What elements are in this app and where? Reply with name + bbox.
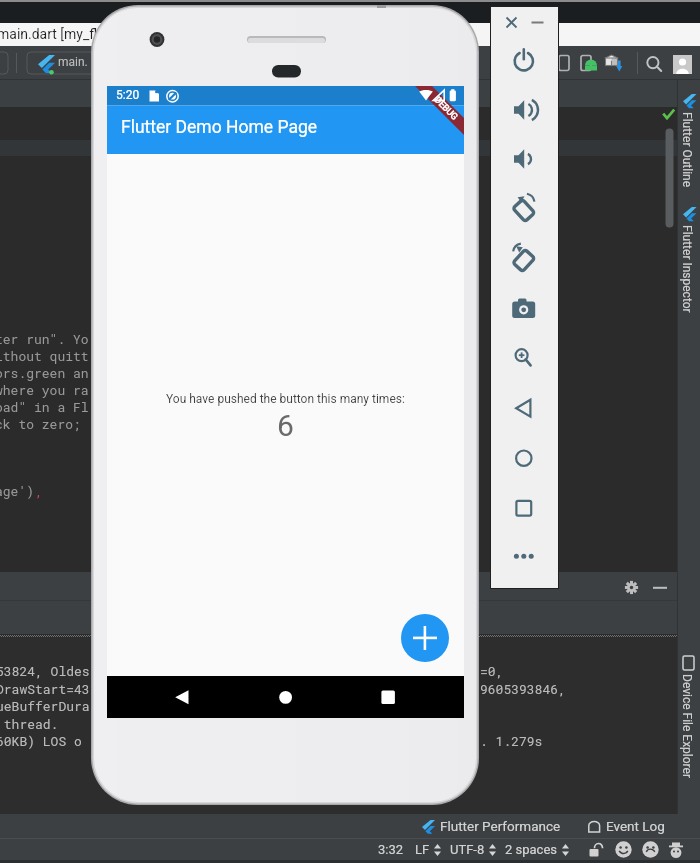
button[interactable]: Happy (615, 841, 632, 858)
staticText: UTF-8 (450, 842, 485, 857)
staticText: Flutter Demo Home Page (121, 117, 318, 138)
button[interactable]: Volume down (504, 146, 544, 172)
staticText: Flutter Inspector (680, 225, 694, 313)
staticText: Device File Explorer (680, 674, 694, 778)
button[interactable]: Flutter Inspector (679, 207, 700, 221)
staticText: ter run". Yo (0, 330, 89, 347)
button[interactable]: Screenshot (504, 296, 544, 322)
button[interactable]: Volume up (504, 97, 544, 123)
staticText: LF (415, 842, 430, 857)
button[interactable]: Back (504, 395, 544, 421)
button[interactable]: Flutter Performance (421, 818, 557, 834)
staticText: ors.green an (0, 364, 89, 381)
staticText: ithout quitt (0, 347, 89, 364)
button[interactable]: Device File Explorer (679, 656, 700, 670)
staticText: 53824, Oldes (0, 662, 90, 679)
button[interactable]: 2 spaces (505, 842, 570, 857)
button[interactable]: More (504, 543, 544, 569)
button[interactable]: Search (643, 52, 663, 72)
staticText: . 1.279s (480, 732, 543, 749)
staticText: , (35, 482, 43, 499)
button[interactable]: Event Log (587, 818, 661, 834)
button[interactable]: Hide (651, 580, 669, 598)
staticText: 5:20 (116, 88, 140, 102)
button[interactable]: Sad (642, 841, 659, 858)
staticText: ck to zero; (0, 415, 89, 432)
staticText: main. (58, 55, 88, 69)
button[interactable]: Flutter Outline (679, 94, 700, 108)
button[interactable]: Power (504, 47, 544, 73)
staticText: 2 spaces (505, 842, 558, 857)
staticText: 9605393846, (480, 680, 566, 697)
staticText: Flutter Performance (440, 818, 561, 834)
staticText: ueBufferDura (0, 697, 90, 714)
button[interactable]: Settings (624, 580, 639, 595)
button[interactable]: Zoom (504, 345, 544, 371)
button[interactable]: Minimise (530, 15, 545, 30)
button[interactable]: Device manager (556, 54, 574, 72)
button[interactable]: Rotate right (504, 246, 544, 272)
button[interactable]: LF (415, 842, 442, 857)
button[interactable]: Close (504, 15, 519, 30)
button[interactable]: Lock (589, 843, 603, 857)
staticText: main.dart [my_fl (0, 26, 98, 42)
staticText: thread. (0, 715, 59, 732)
staticText: 6 (277, 408, 294, 443)
staticText: =0, (480, 662, 504, 679)
staticText: oad" in a Fl (0, 398, 89, 415)
staticText: age') (0, 482, 35, 499)
button[interactable]: Home (504, 445, 544, 471)
button[interactable]: Feedback (668, 842, 684, 858)
staticText: 60KB) LOS o (0, 732, 82, 749)
staticText: Flutter Outline (680, 112, 694, 188)
staticText: DrawStart=43 (0, 680, 90, 697)
button[interactable]: 3:32 (378, 842, 404, 857)
button[interactable]: Rotate left (504, 196, 544, 222)
staticText: You have pushed the button this many tim… (166, 392, 405, 406)
staticText: DEBUG (432, 95, 460, 123)
button[interactable]: Increment (401, 614, 449, 662)
staticText: where you ra (0, 381, 89, 398)
staticText: Event Log (606, 818, 665, 834)
button[interactable]: AVD manager (580, 54, 598, 72)
button[interactable]: Overview (504, 495, 544, 521)
button[interactable]: Account (673, 55, 692, 74)
button[interactable]: SDK manager (604, 53, 626, 75)
button[interactable]: UTF-8 (450, 842, 497, 857)
